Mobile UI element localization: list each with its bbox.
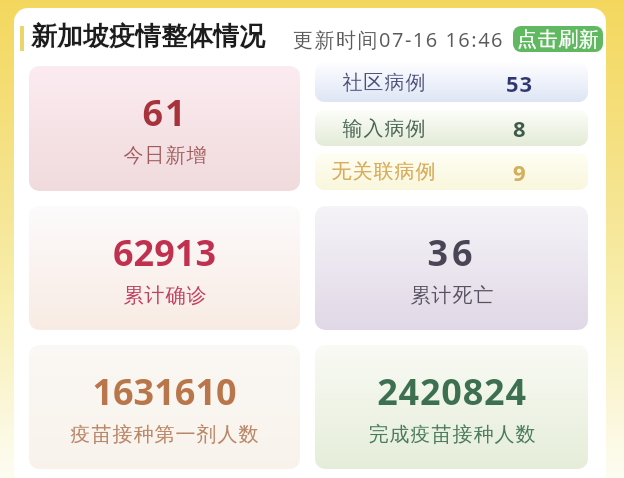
button[interactable]: 36 xyxy=(315,206,588,330)
button[interactable]: 2420824 xyxy=(315,345,588,469)
button[interactable]: 输入病例 xyxy=(315,110,588,146)
staticText: 累计确诊 xyxy=(123,283,207,308)
staticText: 无关联病例 xyxy=(331,159,436,184)
staticText: 完成疫苗接种人数 xyxy=(368,422,536,447)
staticText: 疫苗接种第一剂人数 xyxy=(70,422,259,447)
staticText: 62913 xyxy=(113,228,216,277)
staticText: 社区病例 xyxy=(342,70,426,95)
staticText: 今日新增 xyxy=(123,143,207,168)
staticText: 61 xyxy=(142,88,188,137)
staticText: 新加坡疫情整体情况 xyxy=(31,20,265,53)
staticText: 累计死亡 xyxy=(410,283,494,308)
staticText: 输入病例 xyxy=(342,116,426,141)
button[interactable]: 61 xyxy=(29,66,300,191)
staticText: 2420824 xyxy=(377,367,527,416)
staticText: 36 xyxy=(427,228,477,277)
staticText: 8 xyxy=(513,113,527,143)
staticText: 53 xyxy=(506,68,534,98)
button[interactable]: 社区病例 xyxy=(315,63,588,102)
button[interactable]: 1631610 xyxy=(29,345,300,469)
staticText: 更新时间07-16 16:46 xyxy=(293,26,505,53)
button[interactable]: 无关联病例 xyxy=(315,153,588,190)
staticText: 9 xyxy=(513,157,527,187)
staticText: 1631610 xyxy=(92,367,237,416)
button[interactable]: 62913 xyxy=(29,206,300,330)
staticText: 点击刷新 xyxy=(517,27,599,52)
button[interactable]: 点击刷新 xyxy=(513,26,603,52)
